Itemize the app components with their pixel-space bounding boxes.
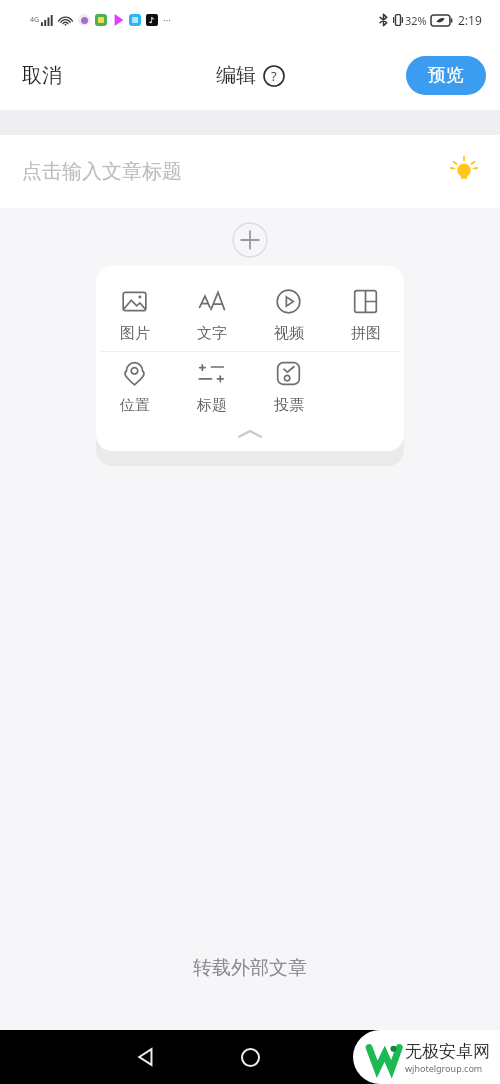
staticText: 转载外部文章: [193, 956, 307, 980]
staticText: 2:19: [458, 12, 482, 28]
button[interactable]: 文字: [173, 280, 250, 351]
staticText: 拼图: [351, 324, 381, 343]
button[interactable]: 预览: [406, 56, 486, 95]
button[interactable]: 拼图: [327, 280, 404, 351]
staticText: 视频: [274, 324, 304, 343]
staticText: 取消: [22, 63, 62, 88]
button[interactable]: 取消: [0, 51, 84, 100]
staticText: 投票: [274, 396, 304, 415]
button[interactable]: 标题: [173, 352, 250, 423]
staticText: 4G: [30, 15, 40, 25]
staticText: ♪: [149, 16, 155, 25]
button[interactable]: 点击输入文章标题: [0, 135, 500, 208]
button[interactable]: 位置: [96, 352, 173, 423]
staticText: 无极安卓网: [405, 1041, 490, 1062]
button[interactable]: 图片: [96, 280, 173, 351]
staticText: 32%: [405, 13, 427, 28]
button[interactable]: Title suggestions: [450, 158, 478, 186]
staticText: 标题: [197, 396, 227, 415]
button[interactable]: 转载外部文章: [169, 946, 331, 990]
button[interactable]: 投票: [250, 352, 327, 423]
staticText: ···: [163, 13, 172, 27]
staticText: ?: [271, 67, 277, 85]
staticText: 图片: [120, 324, 150, 343]
button[interactable]: Home: [228, 1035, 272, 1079]
button[interactable]: 视频: [250, 280, 327, 351]
button[interactable]: Add block: [232, 222, 268, 258]
staticText: wjhotelgroup.com: [405, 1062, 483, 1074]
staticText: 编辑: [216, 63, 256, 88]
button[interactable]: Collapse: [96, 423, 404, 445]
staticText: 位置: [120, 396, 150, 415]
button[interactable]: Help: [263, 65, 285, 87]
staticText: 预览: [428, 64, 464, 87]
button[interactable]: Back: [123, 1035, 167, 1079]
staticText: 点击输入文章标题: [22, 159, 182, 184]
staticText: 文字: [197, 324, 227, 343]
